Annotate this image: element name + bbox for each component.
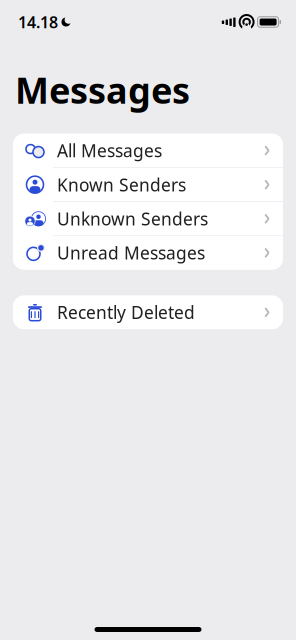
staticText: Unread Messages [57, 241, 205, 264]
staticText: All Messages [57, 139, 162, 162]
button[interactable]: Unread Messages [13, 236, 283, 270]
button[interactable]: Known Senders [13, 168, 283, 202]
staticText: Unknown Senders [57, 207, 208, 230]
button[interactable]: Recently Deleted [13, 296, 283, 329]
button[interactable]: Unknown Senders [13, 202, 283, 236]
staticText: Known Senders [57, 173, 186, 196]
staticText: Messages [15, 66, 190, 114]
button[interactable]: All Messages [13, 134, 283, 168]
staticText: 14.18 [18, 11, 58, 33]
staticText: Recently Deleted [57, 301, 195, 324]
